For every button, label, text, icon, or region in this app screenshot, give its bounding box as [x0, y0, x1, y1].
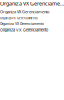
staticText: Organiza VX Gerenciamento — [0, 22, 44, 26]
staticText: Organiza VX Gerenciamento — [0, 9, 49, 14]
staticText: Organiza VX Gerenciamento — [0, 0, 64, 7]
staticText: Organiza VX Gerenciamento — [0, 16, 38, 20]
staticText: Organiza VX Gerenciamento — [0, 28, 48, 32]
